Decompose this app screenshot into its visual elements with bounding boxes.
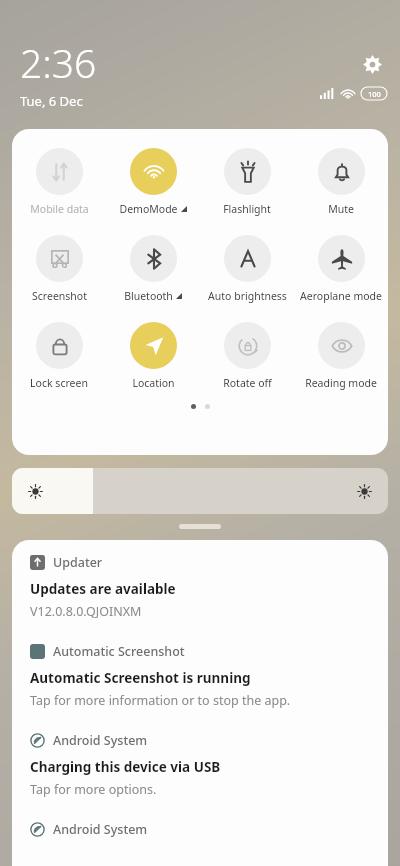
button[interactable]: Aeroplane mode [294, 233, 388, 305]
button[interactable]: Lock screen [12, 320, 106, 392]
button[interactable]: Android System [12, 718, 388, 807]
staticText: Flashlight [223, 202, 271, 216]
staticText: Updater [53, 554, 103, 571]
staticText: 2:36 [20, 36, 97, 89]
staticText: Location [132, 376, 175, 390]
button[interactable]: Bluetooth [106, 233, 200, 305]
staticText: 100 [368, 89, 381, 99]
button[interactable]: Location [106, 320, 200, 392]
staticText: Android System [53, 732, 148, 749]
button[interactable]: Settings [358, 50, 386, 78]
staticText: Auto brightness [208, 289, 287, 303]
staticText: Mute [328, 202, 354, 216]
staticText: Charging this device via USB [30, 758, 221, 776]
staticText: Tue, 6 Dec [20, 92, 83, 110]
button[interactable]: Brightness [12, 468, 388, 514]
staticText: Android System [53, 821, 148, 838]
staticText: Tap for more information or to stop the … [30, 692, 291, 709]
staticText: Updates are available [30, 580, 176, 598]
staticText: Tap for more options. [30, 781, 157, 798]
button[interactable]: Mute [294, 146, 388, 218]
button[interactable]: Rotate off [200, 320, 294, 392]
staticText: Automatic Screenshot [53, 643, 185, 660]
staticText: Lock screen [30, 376, 88, 390]
button[interactable]: DemoMode [106, 146, 200, 218]
staticText: Automatic Screenshot is running [30, 669, 251, 687]
button[interactable]: Reading mode [294, 320, 388, 392]
staticText: DemoMode [119, 202, 178, 216]
button[interactable]: Flashlight [200, 146, 294, 218]
staticText: Mobile data [30, 202, 89, 216]
staticText: Rotate off [223, 376, 272, 390]
button[interactable]: Mobile data [12, 146, 106, 218]
staticText: Aeroplane mode [300, 289, 382, 303]
button[interactable]: Auto brightness [200, 233, 294, 305]
button[interactable]: Automatic Screenshot [12, 629, 388, 718]
button[interactable]: Android System [12, 807, 388, 847]
staticText: Bluetooth [124, 289, 173, 303]
staticText: V12.0.8.0.QJOINXM [30, 603, 142, 620]
staticText: Reading mode [305, 376, 377, 390]
button[interactable]: Screenshot [12, 233, 106, 305]
staticText: Screenshot [32, 289, 87, 303]
button[interactable]: Updater [12, 540, 388, 629]
